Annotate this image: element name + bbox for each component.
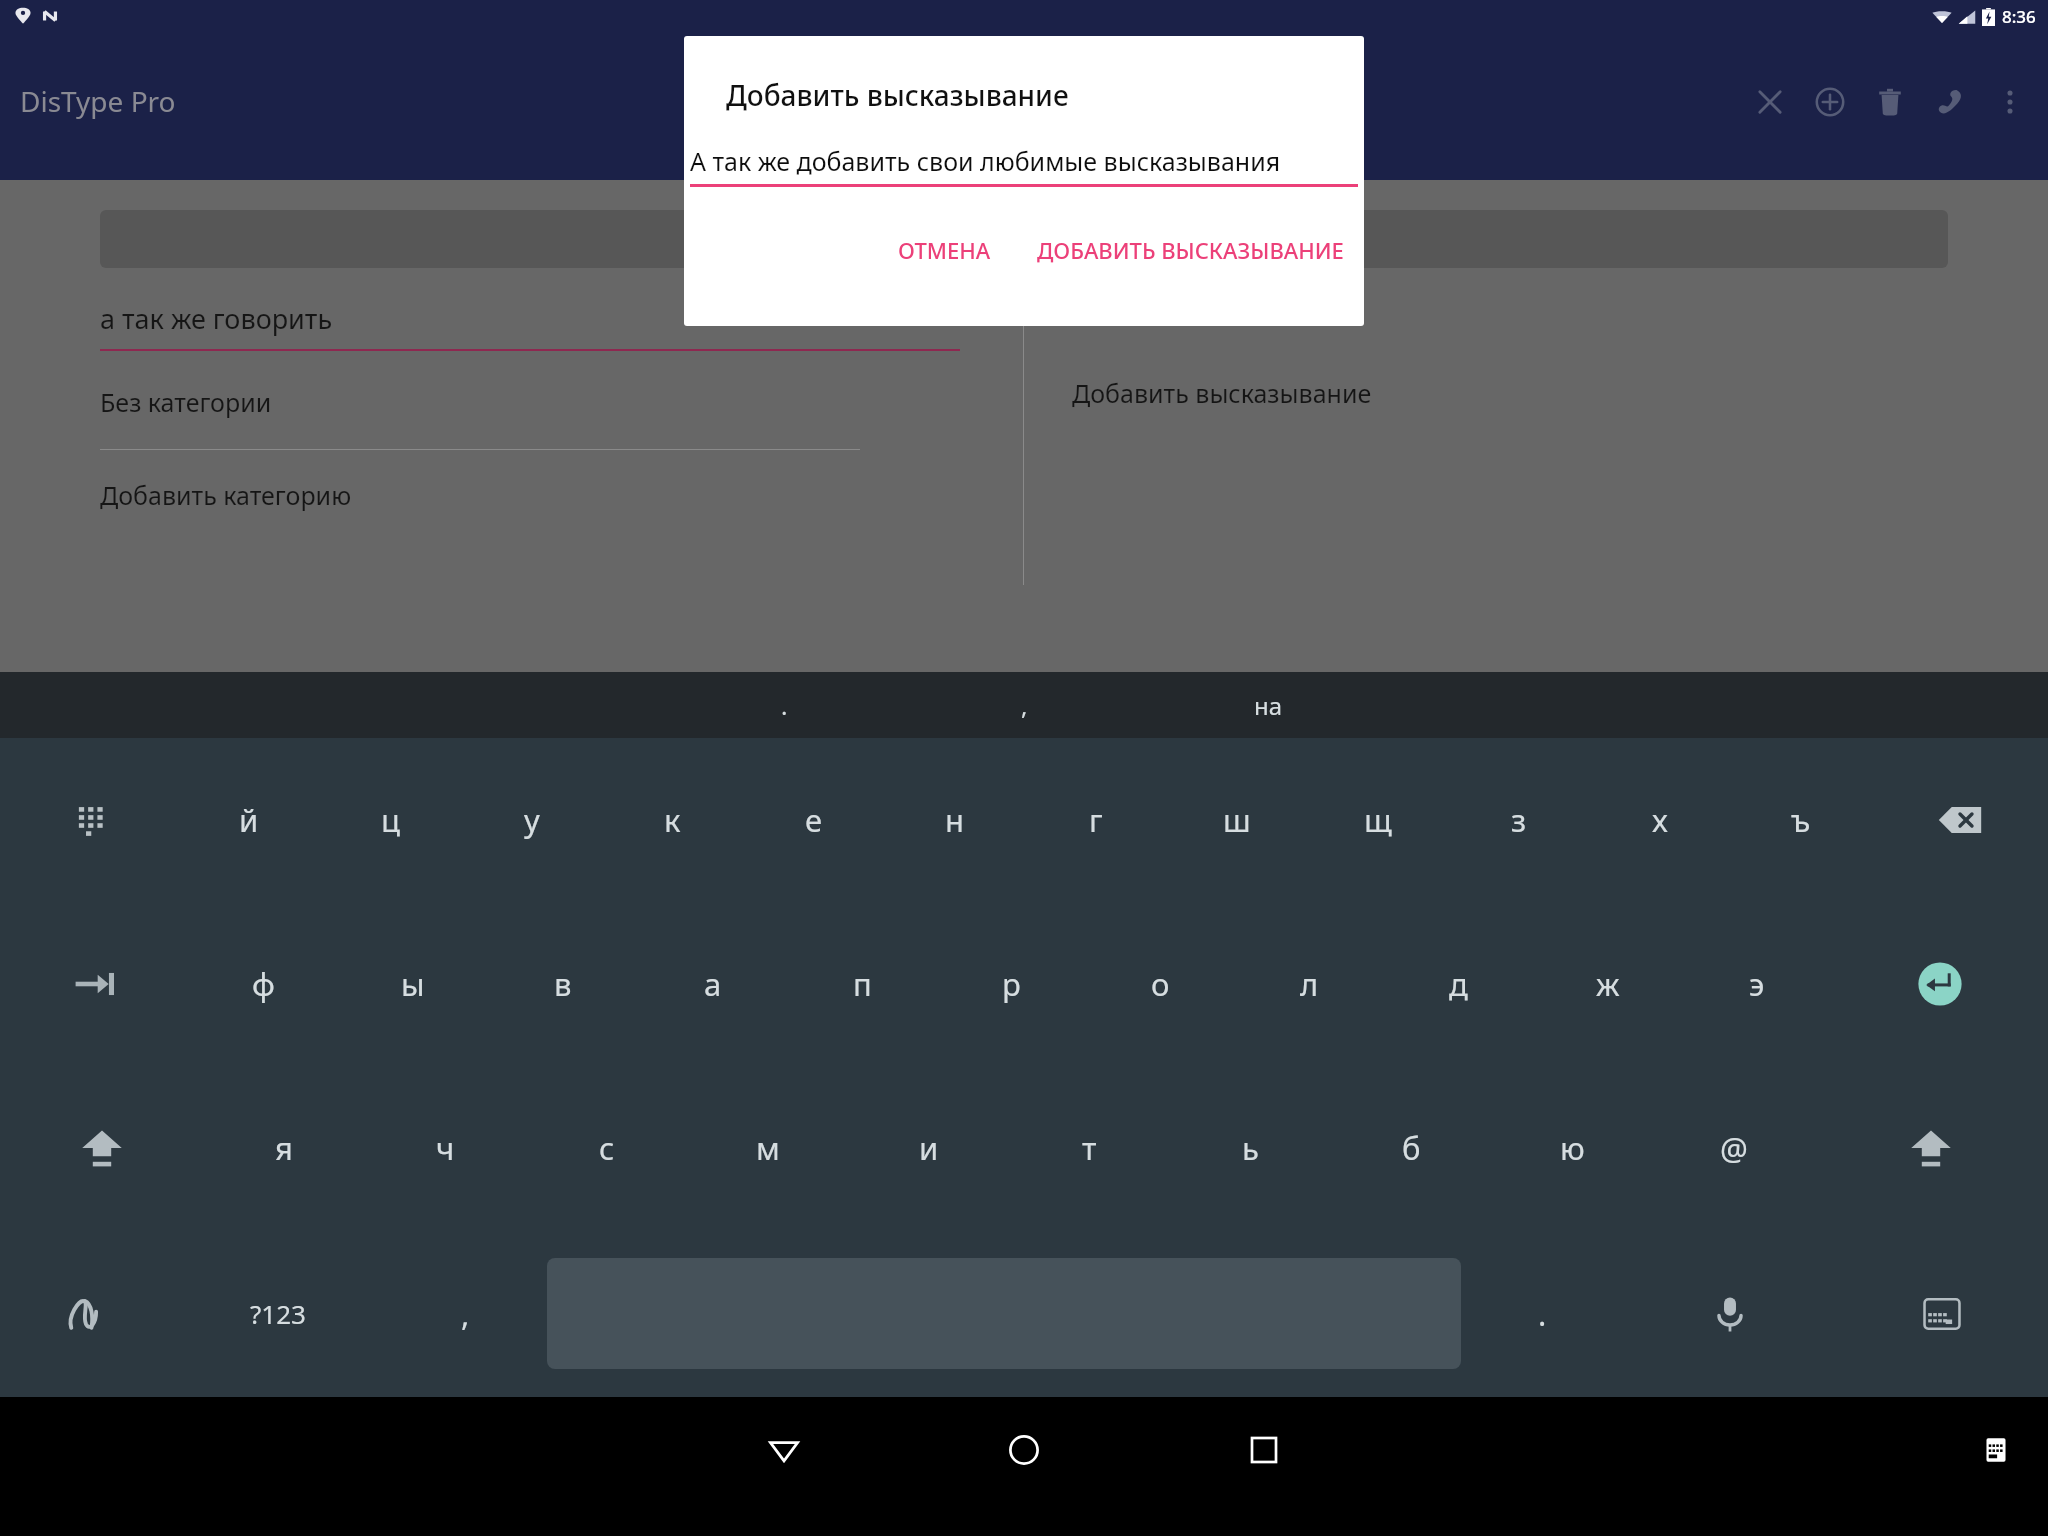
staticText: л (1300, 963, 1319, 1005)
button[interactable]: ж (1533, 902, 1682, 1066)
button[interactable]: ш (1166, 738, 1307, 902)
button[interactable]: Home (969, 1397, 1079, 1502)
button[interactable]: Switch keyboard (1836, 1230, 2048, 1397)
button[interactable]: о (1086, 902, 1235, 1066)
button[interactable]: Call (1920, 72, 1980, 132)
staticText: е (805, 799, 823, 841)
staticText: э (1749, 963, 1765, 1005)
staticText: г (1089, 799, 1103, 841)
button[interactable]: н (884, 738, 1025, 902)
button[interactable]: з (1448, 738, 1589, 902)
button[interactable]: ф (188, 902, 338, 1066)
button[interactable]: Enter (1831, 902, 2048, 1066)
button[interactable]: , (384, 1230, 547, 1397)
button[interactable]: More options (1980, 72, 2040, 132)
staticText: DisType Pro (20, 82, 176, 120)
button[interactable]: Tab (0, 902, 188, 1066)
button[interactable]: Без категории (100, 385, 272, 419)
staticText: ?123 (250, 1296, 306, 1331)
button[interactable]: ю (1492, 1066, 1653, 1230)
button[interactable] (100, 210, 1948, 268)
button[interactable]: а так же говорить (100, 300, 333, 337)
button[interactable]: м (687, 1066, 848, 1230)
staticText: с (599, 1127, 615, 1169)
button[interactable]: Switch keyboard (1968, 1422, 2024, 1478)
button[interactable]: я (203, 1066, 365, 1230)
button[interactable]: й (178, 738, 320, 902)
button[interactable]: ?123 (172, 1230, 384, 1397)
staticText: @ (1720, 1127, 1748, 1169)
staticText: ч (436, 1127, 455, 1169)
button[interactable]: Recents (1209, 1397, 1319, 1502)
button[interactable]: у (461, 738, 602, 902)
button[interactable]: Handwriting (0, 1230, 172, 1397)
staticText: ф (252, 963, 275, 1005)
button[interactable]: ДОБАВИТЬ ВЫСКАЗЫВАНИЕ (1023, 227, 1358, 273)
button[interactable]: щ (1307, 738, 1448, 902)
button[interactable]: и (848, 1066, 1009, 1230)
staticText: я (275, 1127, 293, 1169)
staticText: в (554, 963, 572, 1005)
button[interactable]: ь (1170, 1066, 1331, 1230)
button[interactable]: Add (1800, 72, 1860, 132)
button[interactable]: д (1384, 902, 1533, 1066)
staticText: ш (1223, 799, 1251, 841)
staticText: ы (401, 963, 425, 1005)
staticText: б (1402, 1127, 1421, 1169)
button[interactable]: к (602, 738, 743, 902)
staticText: ж (1596, 963, 1620, 1005)
staticText: Добавить высказывание (726, 76, 1069, 114)
staticText: т (1082, 1127, 1097, 1169)
staticText: д (1449, 963, 1468, 1005)
button[interactable]: Добавить категорию (100, 478, 352, 512)
staticText: м (756, 1127, 780, 1169)
staticText: ю (1560, 1127, 1585, 1169)
staticText: ОТМЕНА (898, 235, 991, 265)
staticText: о (1151, 963, 1170, 1005)
staticText: ДОБАВИТЬ ВЫСКАЗЫВАНИЕ (1037, 235, 1344, 265)
staticText: 8:36 (2002, 5, 2036, 28)
button[interactable]: ъ (1730, 738, 1871, 902)
button[interactable]: ы (338, 902, 488, 1066)
button[interactable]: с (526, 1066, 687, 1230)
button[interactable]: в (488, 902, 638, 1066)
button[interactable]: Back (729, 1397, 839, 1502)
staticText: . (1538, 1293, 1547, 1335)
button[interactable]: л (1235, 902, 1384, 1066)
button[interactable]: . (1461, 1230, 1624, 1397)
button[interactable]: Keypad (0, 738, 178, 902)
button[interactable]: Добавить высказывание (1072, 376, 1372, 410)
button[interactable]: Delete (1860, 72, 1920, 132)
button[interactable]: г (1025, 738, 1166, 902)
button[interactable]: б (1331, 1066, 1492, 1230)
button[interactable]: Shift (0, 1066, 203, 1230)
staticText: к (664, 799, 681, 841)
staticText: р (1002, 963, 1021, 1005)
button[interactable]: Close (1740, 72, 1800, 132)
staticText: ь (1242, 1127, 1259, 1169)
button[interactable]: е (743, 738, 884, 902)
staticText: ц (381, 799, 400, 841)
staticText: й (239, 799, 259, 841)
staticText: а (704, 963, 722, 1005)
button[interactable]: ц (320, 738, 461, 902)
button[interactable]: х (1589, 738, 1730, 902)
button[interactable]: т (1009, 1066, 1170, 1230)
button[interactable]: а (638, 902, 788, 1066)
button[interactable]: п (788, 902, 937, 1066)
button[interactable]: @ (1653, 1066, 1814, 1230)
staticText: , (461, 1293, 470, 1335)
button[interactable]: Backspace (1871, 738, 2048, 902)
staticText: и (919, 1127, 939, 1169)
button[interactable]: Shift (1814, 1066, 2048, 1230)
button[interactable]: ОТМЕНА (884, 227, 1005, 273)
staticText: х (1652, 799, 1668, 841)
button[interactable]: ч (365, 1066, 526, 1230)
button[interactable]: э (1682, 902, 1831, 1066)
button[interactable]: р (937, 902, 1086, 1066)
staticText: ъ (1791, 799, 1811, 841)
staticText: на (1254, 689, 1283, 722)
button[interactable]: Voice input (1624, 1230, 1836, 1397)
staticText: п (853, 963, 872, 1005)
